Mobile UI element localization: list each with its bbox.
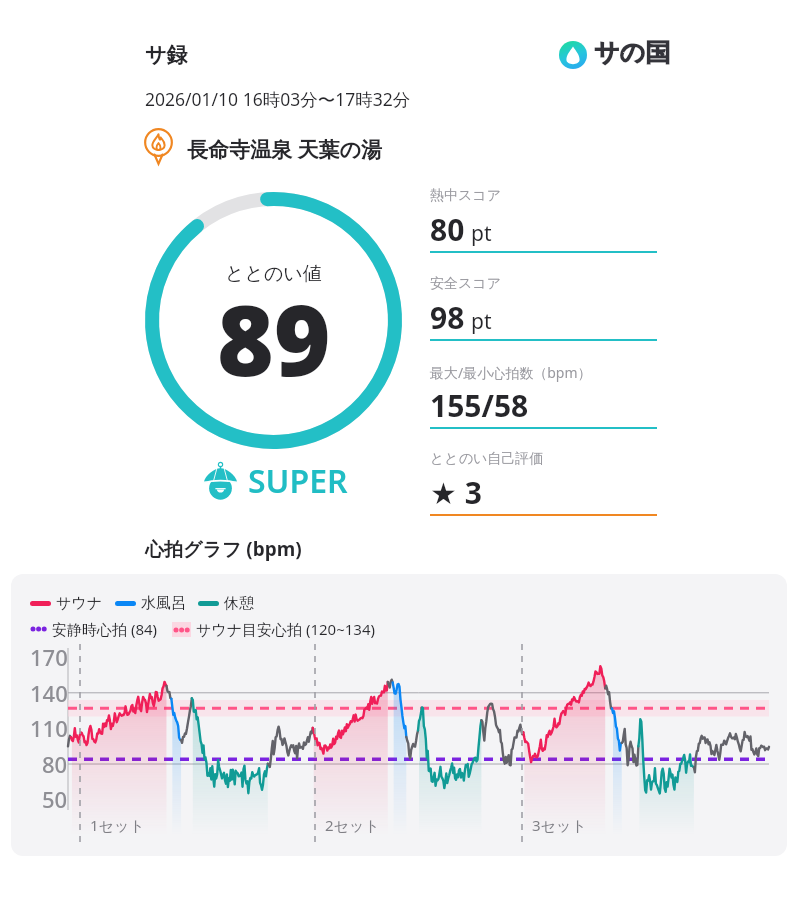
- staticText: 安静時心拍 (84): [52, 619, 158, 639]
- staticText: サウナ目安心拍 (120~134): [196, 619, 376, 639]
- staticText: pt: [471, 219, 492, 248]
- staticText: サウナ: [56, 594, 103, 613]
- staticText: 170: [30, 642, 68, 672]
- staticText: 2026/01/10 16時03分〜17時32分: [145, 87, 411, 111]
- staticText: 最大/最小心拍数（bpm）: [430, 363, 592, 382]
- staticText: 80: [430, 209, 465, 250]
- staticText: サの国: [594, 37, 671, 68]
- staticText: ととのい値: [225, 262, 322, 286]
- staticText: 2セット: [325, 815, 380, 835]
- staticText: 休憩: [224, 594, 254, 613]
- button[interactable]: 熱中スコア: [430, 187, 657, 254]
- staticText: 98: [430, 297, 465, 338]
- staticText: pt: [471, 307, 492, 336]
- staticText: 心拍グラフ (bpm): [145, 536, 302, 562]
- staticText: 安全スコア: [430, 275, 501, 293]
- staticText: ととのい自己評価: [430, 450, 544, 468]
- other: サの国: [559, 41, 587, 69]
- staticText: 140: [30, 678, 68, 708]
- staticText: 110: [30, 713, 68, 743]
- staticText: 長命寺温泉 天葉の湯: [187, 135, 382, 164]
- staticText: 水風呂: [141, 594, 186, 613]
- staticText: 3セット: [532, 815, 587, 835]
- staticText: 89: [217, 272, 331, 404]
- button[interactable]: サの国: [559, 39, 671, 70]
- button[interactable]: 最大/最小心拍数（bpm）: [430, 363, 657, 430]
- staticText: 50: [42, 784, 68, 814]
- button[interactable]: 安全スコア: [430, 275, 657, 342]
- staticText: SUPER: [248, 459, 348, 503]
- staticText: ★ 3: [430, 472, 482, 513]
- staticText: 80: [42, 749, 68, 779]
- staticText: 熱中スコア: [430, 187, 501, 205]
- staticText: 155/58: [430, 385, 529, 426]
- staticText: サ録: [145, 42, 188, 68]
- button[interactable]: ととのい自己評価: [430, 450, 657, 517]
- staticText: 1セット: [90, 815, 145, 835]
